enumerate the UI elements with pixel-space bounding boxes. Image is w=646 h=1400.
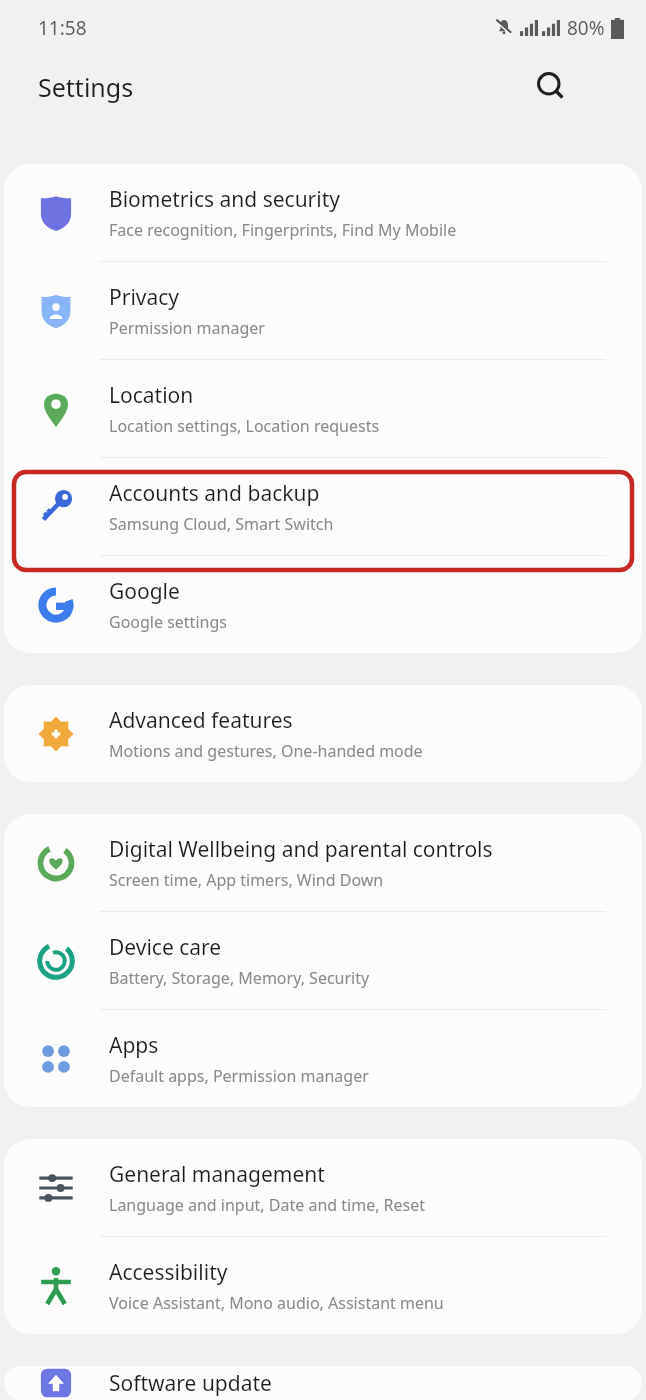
button[interactable]: Google [4, 556, 642, 653]
staticText: Software update [109, 1369, 272, 1398]
staticText: Location [109, 381, 194, 410]
staticText: Accessibility [109, 1258, 228, 1287]
staticText: Permission manager [109, 317, 265, 339]
staticText: Location settings, Location requests [109, 415, 380, 437]
staticText: Motions and gestures, One-handed mode [109, 740, 423, 762]
button[interactable]: Accounts and backup [4, 458, 642, 555]
button[interactable]: Privacy [4, 262, 642, 359]
staticText: Google settings [109, 611, 227, 633]
button[interactable]: Advanced features [4, 685, 642, 782]
staticText: Apps [109, 1031, 159, 1060]
staticText: Accounts and backup [109, 479, 320, 508]
staticText: Settings [38, 70, 134, 104]
staticText: Voice Assistant, Mono audio, Assistant m… [109, 1292, 444, 1314]
button[interactable]: Biometrics and security [4, 164, 642, 261]
staticText: Battery, Storage, Memory, Security [109, 967, 370, 989]
button[interactable]: Location [4, 360, 642, 457]
button[interactable]: General management [4, 1139, 642, 1236]
button[interactable]: Accessibility [4, 1237, 642, 1334]
staticText: Language and input, Date and time, Reset [109, 1194, 426, 1216]
staticText: General management [109, 1160, 325, 1189]
button[interactable]: Software update [4, 1366, 642, 1400]
button[interactable]: Device care [4, 912, 642, 1009]
staticText: Biometrics and security [109, 185, 340, 214]
button[interactable]: Apps [4, 1010, 642, 1107]
staticText: Face recognition, Fingerprints, Find My … [109, 219, 457, 241]
staticText: Google [109, 577, 180, 606]
staticText: Samsung Cloud, Smart Switch [109, 513, 334, 535]
staticText: 80% [567, 15, 605, 41]
staticText: Screen time, App timers, Wind Down [109, 869, 384, 891]
staticText: 11:58 [38, 15, 87, 41]
button[interactable]: Search [528, 64, 574, 110]
staticText: Advanced features [109, 706, 293, 735]
staticText: Digital Wellbeing and parental controls [109, 835, 493, 864]
staticText: Device care [109, 933, 222, 962]
button[interactable]: Digital Wellbeing and parental controls [4, 814, 642, 911]
staticText: Privacy [109, 283, 180, 312]
staticText: Default apps, Permission manager [109, 1065, 369, 1087]
